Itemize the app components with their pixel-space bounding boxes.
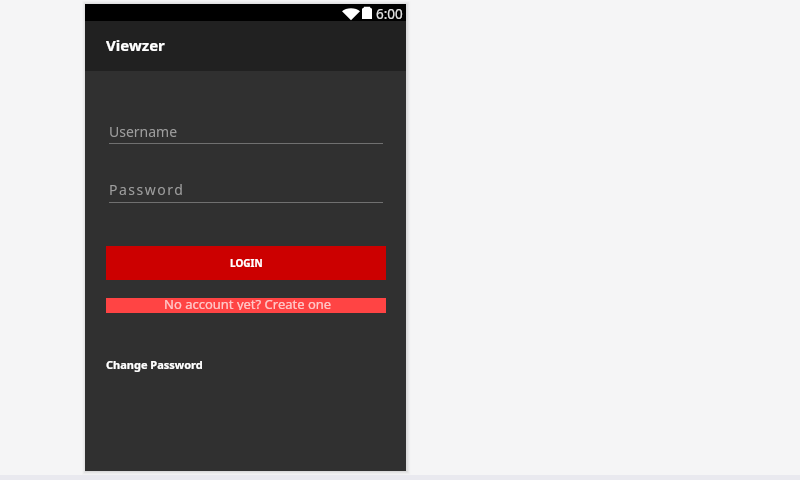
other: Wi-Fi signal [342, 7, 360, 21]
staticText: Password [109, 180, 185, 199]
staticText: Viewzer [106, 35, 165, 55]
button[interactable]: LOGIN [106, 246, 386, 280]
button[interactable]: Password [109, 176, 383, 203]
staticText: Username [109, 122, 178, 141]
staticText: LOGIN [230, 256, 263, 270]
button[interactable]: Change Password [106, 357, 203, 372]
other: Battery [362, 6, 372, 23]
staticText: 6:00 [376, 5, 403, 22]
button[interactable]: Username [109, 118, 383, 144]
button[interactable]: No account yet? Create one [106, 298, 386, 313]
staticText: No account yet? Create one [164, 295, 332, 310]
